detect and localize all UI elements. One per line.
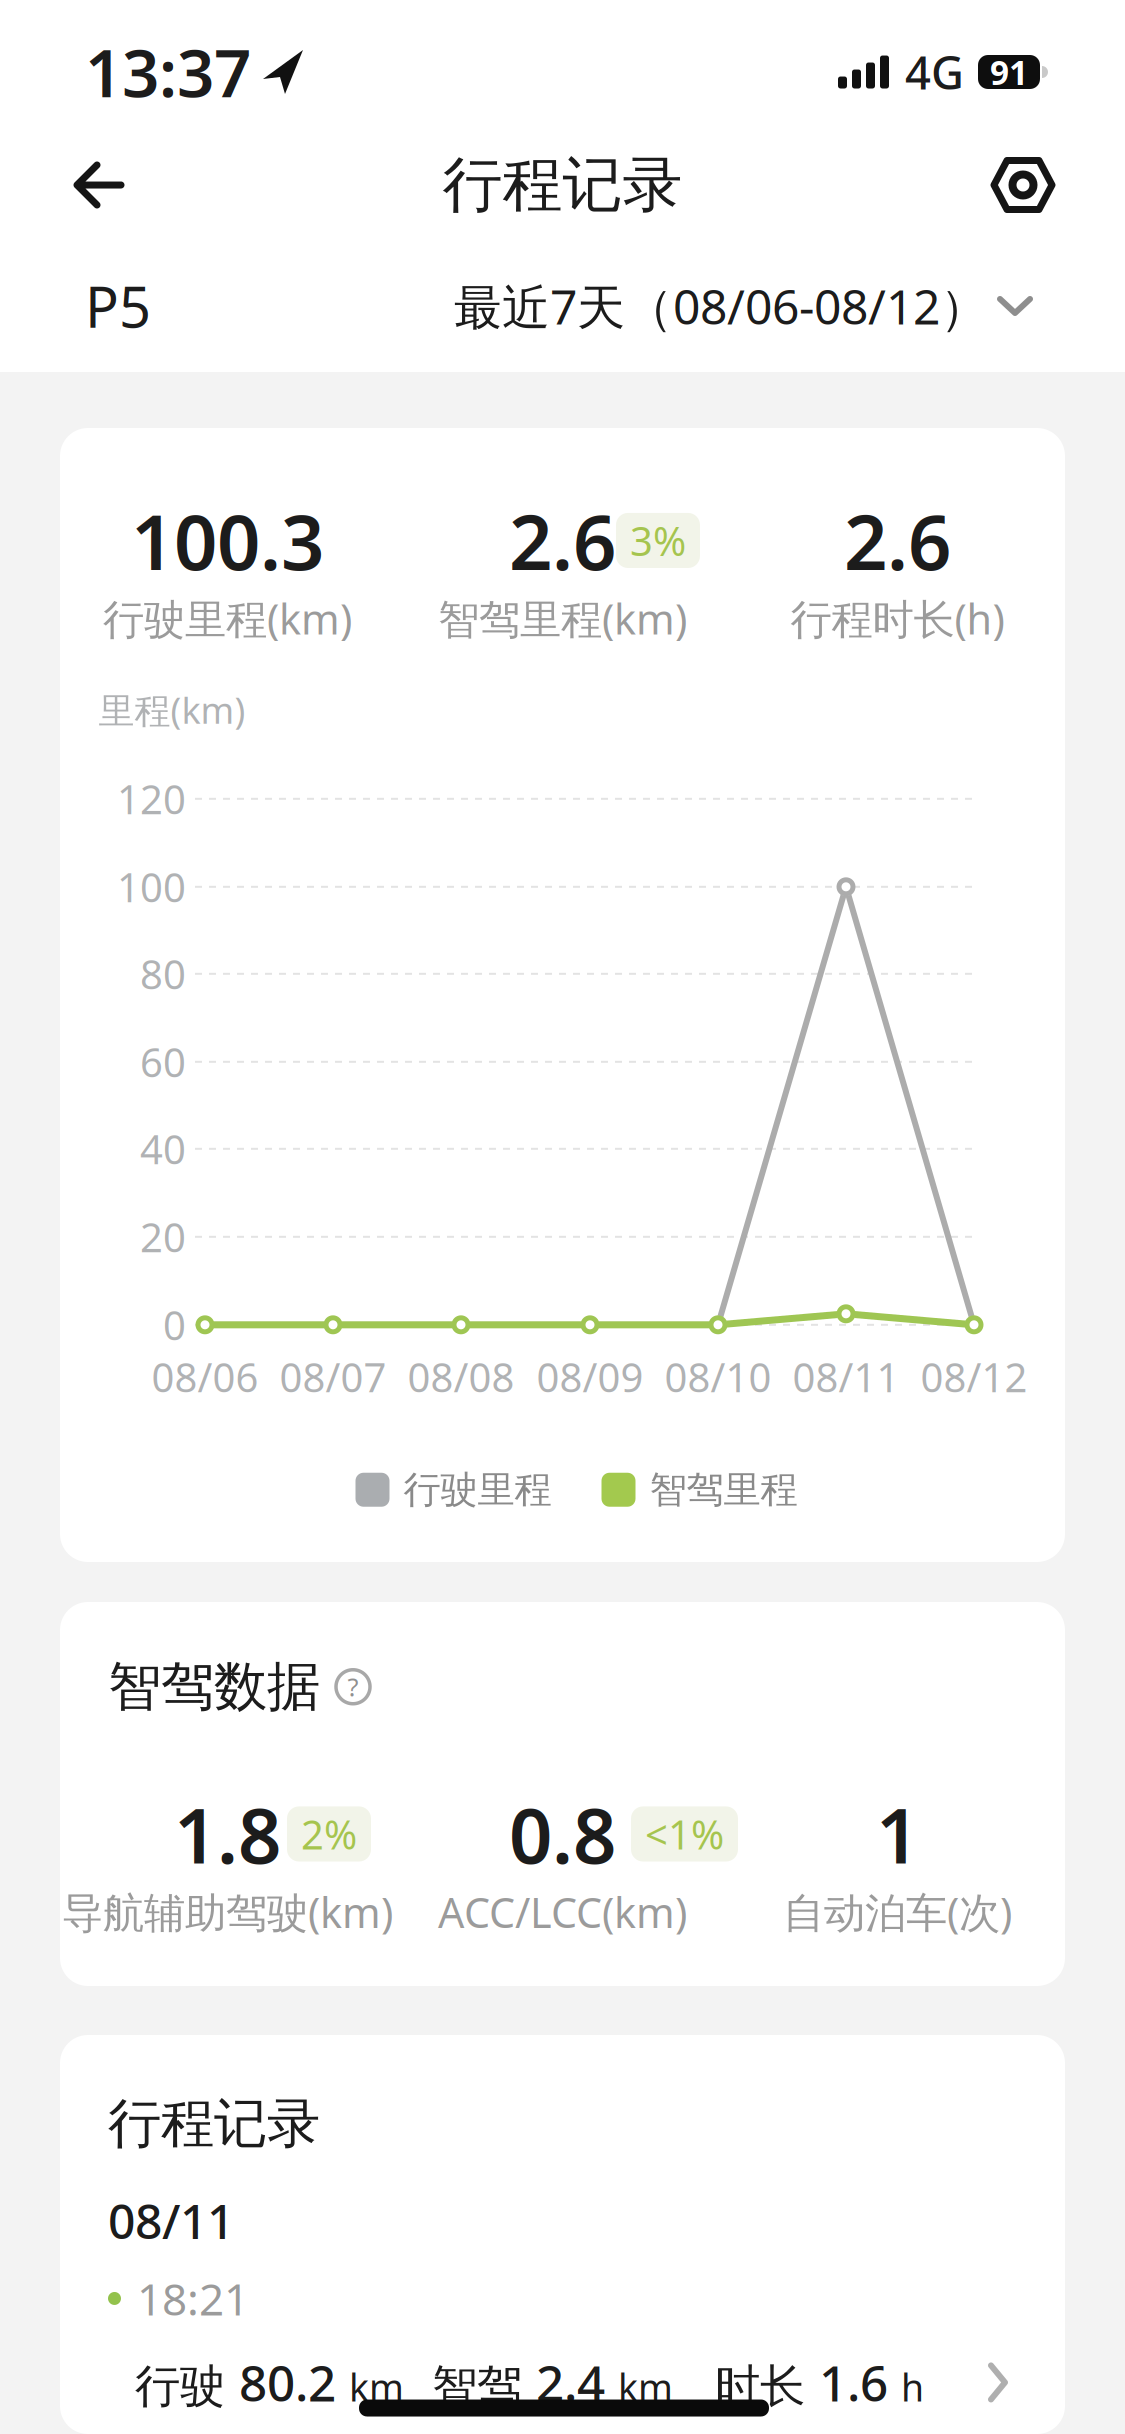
staticText: h [901, 2362, 924, 2412]
staticText: 08/09 [536, 1350, 643, 1403]
staticText: 0.8 [509, 1783, 616, 1884]
staticText: 导航辅助驾驶(km) [62, 1884, 393, 1939]
staticText: 08/12 [920, 1350, 1027, 1403]
staticText: 100 [117, 860, 186, 913]
staticText: 智驾 [404, 2359, 536, 2414]
staticText: 08/08 [407, 1350, 514, 1403]
staticText: km [349, 2362, 404, 2412]
staticText: 行程时长(h) [790, 591, 1004, 646]
staticText: 13:37 [85, 29, 251, 115]
staticText: 91 [990, 50, 1028, 94]
staticText: 08/10 [664, 1350, 771, 1403]
staticText: 自动泊车(次) [783, 1884, 1012, 1939]
staticText: 智驾数据 [108, 1654, 320, 1719]
staticText: 2.6 [844, 490, 951, 591]
staticText: 18:21 [137, 2269, 249, 2328]
staticText: 08/11 [792, 1350, 899, 1403]
button[interactable]: 隐私模式 [991, 157, 1125, 213]
staticText: 100.3 [131, 490, 324, 591]
button[interactable]: 行驶 [60, 2328, 1065, 2415]
staticText: ? [347, 1670, 358, 1703]
staticText: 08/11 [108, 2188, 234, 2252]
button[interactable]: 返回 [0, 163, 123, 207]
staticText: <1% [645, 1807, 724, 1860]
staticText: 2.6 [509, 490, 616, 591]
staticText: 120 [117, 772, 186, 825]
staticText: 2% [301, 1807, 357, 1860]
staticText: 20 [140, 1210, 186, 1263]
staticText: 里程(km) [98, 686, 245, 734]
staticText: 4G [905, 42, 964, 102]
staticText: ACC/LCC(km) [438, 1884, 687, 1939]
staticText: 智驾里程(km) [438, 591, 687, 646]
staticText: 3% [630, 514, 686, 567]
staticText: 80 [140, 947, 186, 1000]
staticText: 最近7天（08/06-08/12） [454, 274, 988, 338]
staticText: 80.2 [239, 2350, 349, 2415]
staticText: 时长 [673, 2359, 819, 2414]
staticText: 1.6 [819, 2350, 901, 2415]
staticText: 40 [140, 1122, 186, 1175]
staticText: 08/07 [279, 1350, 386, 1403]
staticText: 0 [163, 1298, 186, 1351]
staticText: 行程记录 [442, 148, 682, 222]
staticText: 2.4 [536, 2350, 618, 2415]
button[interactable]: 最近7天（08/06-08/12） [454, 274, 1032, 338]
staticText: 行程记录 [108, 2091, 320, 2156]
staticText: 智驾里程 [649, 1467, 797, 1513]
staticText: 行驶里程(km) [103, 591, 352, 646]
staticText: 行驶 [135, 2359, 239, 2414]
button[interactable]: 智驾数据说明 [334, 1668, 372, 1706]
staticText: km [618, 2362, 673, 2412]
button[interactable]: P5 [85, 269, 151, 343]
staticText: 08/06 [151, 1350, 258, 1403]
staticText: 60 [140, 1035, 186, 1088]
staticText: 1.8 [174, 1783, 281, 1884]
staticText: 1 [876, 1783, 919, 1884]
staticText: P5 [85, 269, 151, 343]
staticText: 行驶里程 [403, 1467, 551, 1513]
